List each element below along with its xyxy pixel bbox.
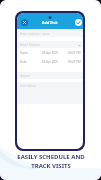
staticText: Add Visit	[42, 20, 58, 25]
staticText: Subject	[20, 74, 30, 78]
button[interactable]: Select Purpose	[17, 41, 83, 48]
button[interactable]: Ends	[17, 58, 83, 65]
staticText: 05 Apr 2021	[42, 60, 59, 64]
staticText: 06:47 PM	[68, 51, 81, 55]
button[interactable]: Starts	[17, 49, 83, 56]
staticText: Enter customer name	[20, 32, 50, 36]
button[interactable]: Subject	[17, 72, 83, 79]
staticText: EASILY SCHEDULE AND TRACK VISITS	[17, 153, 85, 169]
staticText: Description	[20, 84, 36, 88]
button[interactable]: Enter customer name	[17, 30, 83, 37]
button[interactable]: Save	[75, 19, 82, 26]
button[interactable]: Close	[21, 19, 28, 26]
staticText: Ends	[20, 60, 27, 64]
staticText: Starts	[20, 51, 28, 55]
staticText: Select Purpose	[20, 43, 41, 47]
staticText: 06:47 PM	[68, 60, 81, 64]
staticText: 05 Apr 2021	[42, 51, 59, 55]
